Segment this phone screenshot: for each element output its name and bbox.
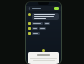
button[interactable]: [28, 22, 59, 25]
button[interactable]: [28, 27, 59, 30]
button[interactable]: [44, 22, 50, 25]
button[interactable]: [28, 32, 59, 35]
button[interactable]: [28, 52, 59, 64]
button[interactable]: [32, 32, 40, 35]
button[interactable]: [32, 27, 38, 30]
button[interactable]: Back: [26, 6, 61, 11]
button[interactable]: Back: [28, 7, 31, 10]
button[interactable]: [32, 22, 43, 25]
button[interactable]: [39, 27, 46, 30]
button[interactable]: Badge: [42, 49, 45, 52]
button[interactable]: [28, 13, 59, 20]
button[interactable]: Online: [54, 7, 59, 10]
